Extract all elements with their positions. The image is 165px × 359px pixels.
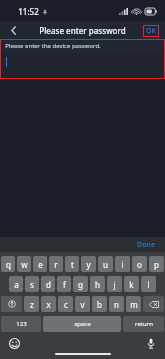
button[interactable]: Emoji bbox=[9, 338, 20, 349]
staticText: u bbox=[103, 259, 108, 270]
button[interactable]: c bbox=[58, 296, 73, 312]
button[interactable]: return bbox=[123, 316, 164, 332]
staticText: n bbox=[114, 299, 119, 310]
staticText: t bbox=[71, 259, 74, 270]
button[interactable]: e bbox=[33, 256, 47, 272]
button[interactable]: n bbox=[109, 296, 124, 312]
button[interactable]: t bbox=[65, 256, 79, 272]
staticText: j bbox=[113, 279, 116, 290]
staticText: x bbox=[46, 299, 51, 310]
staticText: m bbox=[130, 299, 138, 310]
button[interactable]: q bbox=[1, 256, 15, 272]
button[interactable]: k bbox=[124, 276, 139, 292]
button[interactable]: Backspace bbox=[143, 296, 164, 312]
button[interactable]: b bbox=[92, 296, 107, 312]
button[interactable]: m bbox=[126, 296, 141, 312]
staticText: Please enter the device password. bbox=[5, 42, 101, 50]
button[interactable]: f bbox=[57, 276, 71, 292]
button[interactable]: y bbox=[81, 256, 96, 272]
staticText: w bbox=[21, 259, 28, 270]
button[interactable]: w bbox=[17, 256, 31, 272]
staticText: a bbox=[14, 279, 19, 290]
staticText: f bbox=[63, 279, 66, 290]
staticText: Please enter password bbox=[39, 25, 126, 36]
staticText: r bbox=[54, 259, 58, 270]
staticText: Done bbox=[137, 240, 155, 250]
button[interactable]: OK bbox=[146, 26, 156, 36]
staticText: space bbox=[74, 320, 91, 328]
button[interactable]: Shift bbox=[1, 296, 22, 312]
button[interactable]: Back bbox=[0, 22, 26, 39]
button[interactable]: Voice input bbox=[147, 338, 155, 349]
staticText: b bbox=[97, 299, 102, 310]
button[interactable]: o bbox=[132, 256, 147, 272]
button[interactable]: d bbox=[41, 276, 55, 292]
staticText: v bbox=[80, 299, 85, 310]
staticText: g bbox=[78, 279, 83, 290]
staticText: d bbox=[46, 279, 51, 290]
staticText: 123 bbox=[16, 320, 27, 328]
staticText: y bbox=[86, 259, 91, 270]
button[interactable]: h bbox=[90, 276, 105, 292]
staticText: c bbox=[64, 299, 68, 310]
button[interactable]: s bbox=[25, 276, 39, 292]
staticText: return bbox=[135, 320, 153, 328]
button[interactable]: g bbox=[73, 276, 88, 292]
button[interactable]: a bbox=[9, 276, 23, 292]
staticText: 11:52 bbox=[18, 6, 39, 17]
staticText: OK bbox=[146, 26, 156, 36]
button[interactable]: p bbox=[149, 256, 164, 272]
staticText: l bbox=[147, 279, 150, 290]
button[interactable]: v bbox=[75, 296, 90, 312]
button[interactable]: u bbox=[98, 256, 113, 272]
button[interactable] bbox=[0, 53, 165, 79]
button[interactable]: space bbox=[43, 316, 121, 332]
button[interactable]: r bbox=[49, 256, 63, 272]
staticText: e bbox=[38, 259, 43, 270]
button[interactable]: z bbox=[24, 296, 39, 312]
button[interactable]: l bbox=[141, 276, 156, 292]
button[interactable]: i bbox=[115, 256, 130, 272]
button[interactable]: j bbox=[107, 276, 122, 292]
staticText: q bbox=[6, 259, 11, 270]
button[interactable]: 123 bbox=[1, 316, 41, 332]
staticText: z bbox=[30, 299, 34, 310]
staticText: p bbox=[154, 259, 159, 270]
staticText: h bbox=[95, 279, 100, 290]
button[interactable]: Done bbox=[137, 240, 155, 250]
staticText: i bbox=[121, 259, 124, 270]
staticText: o bbox=[137, 259, 142, 270]
staticText: k bbox=[129, 279, 134, 290]
staticText: s bbox=[30, 279, 34, 290]
button[interactable]: x bbox=[41, 296, 56, 312]
